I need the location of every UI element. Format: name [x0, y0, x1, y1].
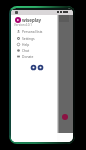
- staticText: Personal lists: [22, 29, 43, 33]
- staticText: Donate: [22, 54, 34, 58]
- button[interactable]: Settings: [11, 35, 57, 41]
- staticText: Settings: [22, 36, 35, 40]
- button[interactable]: Donate: [11, 53, 57, 59]
- staticText: Help: [22, 42, 30, 46]
- button[interactable]: Add list: [62, 114, 68, 120]
- staticText: Chat: [22, 48, 30, 52]
- button[interactable]: Facebook: [31, 65, 36, 70]
- button[interactable]: Help: [11, 41, 57, 47]
- staticText: Version 4.0.1: [14, 23, 33, 27]
- button[interactable]: Personal lists: [11, 28, 57, 34]
- button[interactable]: Chat: [11, 47, 57, 53]
- staticText: wiseplay: [22, 17, 42, 23]
- button[interactable]: Twitter: [38, 65, 43, 70]
